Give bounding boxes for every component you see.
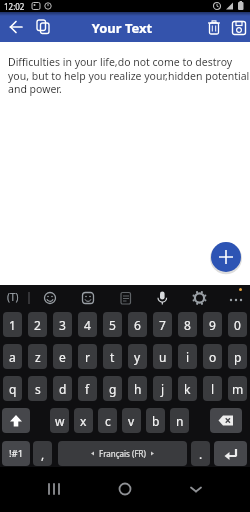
- button[interactable]: e: [53, 344, 72, 369]
- button[interactable]: j: [153, 376, 172, 401]
- button[interactable]: [2, 287, 26, 311]
- button[interactable]: [214, 441, 247, 466]
- button[interactable]: [4, 15, 28, 39]
- staticText: a: [9, 349, 16, 365]
- button[interactable]: [210, 408, 242, 433]
- button[interactable]: ,: [33, 441, 52, 466]
- staticText: f: [85, 381, 90, 397]
- button[interactable]: d: [53, 376, 72, 401]
- button[interactable]: 5: [103, 312, 122, 337]
- staticText: 2: [34, 317, 41, 333]
- button[interactable]: z: [28, 344, 47, 369]
- staticText: 5: [109, 317, 116, 333]
- staticText: n: [176, 413, 184, 429]
- staticText: 8: [184, 317, 191, 333]
- button[interactable]: [184, 477, 208, 501]
- staticText: d: [59, 381, 67, 397]
- staticText: e: [59, 349, 66, 365]
- staticText: c: [105, 413, 111, 429]
- staticText: .: [199, 446, 203, 462]
- staticText: Français (FR): [99, 448, 146, 459]
- staticText: !#1: [9, 447, 24, 460]
- staticText: w: [55, 413, 65, 429]
- button[interactable]: !#1: [2, 441, 30, 466]
- staticText: q: [9, 381, 17, 397]
- button[interactable]: 8: [178, 312, 197, 337]
- staticText: 9: [209, 317, 216, 333]
- staticText: s: [35, 381, 41, 397]
- button[interactable]: [38, 287, 62, 311]
- staticText: z: [35, 349, 41, 365]
- button[interactable]: [226, 287, 250, 311]
- staticText: i: [186, 349, 190, 365]
- staticText: 1: [9, 317, 16, 333]
- staticText: 0: [234, 317, 241, 333]
- button[interactable]: [42, 477, 66, 501]
- button[interactable]: v: [122, 408, 141, 433]
- staticText: k: [184, 381, 191, 397]
- staticText: 7: [159, 317, 166, 333]
- button[interactable]: [187, 287, 211, 311]
- button[interactable]: [113, 477, 137, 501]
- button[interactable]: s: [28, 376, 47, 401]
- staticText: y: [134, 349, 141, 365]
- button[interactable]: 3: [53, 312, 72, 337]
- button[interactable]: k: [178, 376, 197, 401]
- button[interactable]: 4: [78, 312, 97, 337]
- button[interactable]: f: [78, 376, 97, 401]
- staticText: 3: [59, 317, 66, 333]
- staticText: x: [80, 413, 87, 429]
- button[interactable]: [202, 16, 226, 40]
- button[interactable]: y: [128, 344, 147, 369]
- button[interactable]: b: [146, 408, 165, 433]
- staticText: t: [110, 349, 115, 365]
- staticText: Your Text: [0, 19, 244, 37]
- staticText: h: [134, 381, 142, 397]
- staticText: v: [128, 413, 135, 429]
- button[interactable]: u: [153, 344, 172, 369]
- button[interactable]: r: [78, 344, 97, 369]
- button[interactable]: o: [203, 344, 222, 369]
- button[interactable]: a: [3, 344, 22, 369]
- button[interactable]: .: [191, 441, 210, 466]
- button[interactable]: [76, 287, 100, 311]
- button[interactable]: [31, 15, 55, 39]
- button[interactable]: h: [128, 376, 147, 401]
- button[interactable]: 9: [203, 312, 222, 337]
- button[interactable]: [211, 242, 241, 272]
- button[interactable]: 0: [228, 312, 247, 337]
- staticText: u: [159, 349, 167, 365]
- staticText: p: [234, 349, 242, 365]
- button[interactable]: q: [3, 376, 22, 401]
- button[interactable]: [150, 287, 174, 311]
- button[interactable]: 6: [128, 312, 147, 337]
- button[interactable]: [113, 287, 137, 311]
- button[interactable]: p: [228, 344, 247, 369]
- button[interactable]: t: [103, 344, 122, 369]
- button[interactable]: [2, 408, 30, 433]
- staticText: b: [152, 413, 160, 429]
- button[interactable]: m: [228, 376, 247, 401]
- staticText: ,: [41, 446, 45, 462]
- button[interactable]: l: [203, 376, 222, 401]
- button[interactable]: 2: [28, 312, 47, 337]
- button[interactable]: g: [103, 376, 122, 401]
- staticText: o: [209, 349, 217, 365]
- button[interactable]: w: [50, 408, 69, 433]
- button[interactable]: i: [178, 344, 197, 369]
- button[interactable]: x: [74, 408, 93, 433]
- staticText: Difficulties in your life,do not come to…: [8, 55, 250, 96]
- staticText: g: [109, 381, 117, 397]
- staticText: r: [85, 349, 90, 365]
- button[interactable]: [227, 16, 250, 40]
- staticText: m: [232, 381, 244, 397]
- staticText: (T): [7, 290, 19, 304]
- button[interactable]: c: [98, 408, 117, 433]
- button[interactable]: 1: [3, 312, 22, 337]
- staticText: 6: [134, 317, 141, 333]
- staticText: 4: [84, 317, 91, 333]
- button[interactable]: Français (FR): [58, 441, 187, 466]
- button[interactable]: n: [170, 408, 189, 433]
- staticText: 12:02: [4, 1, 25, 12]
- button[interactable]: 7: [153, 312, 172, 337]
